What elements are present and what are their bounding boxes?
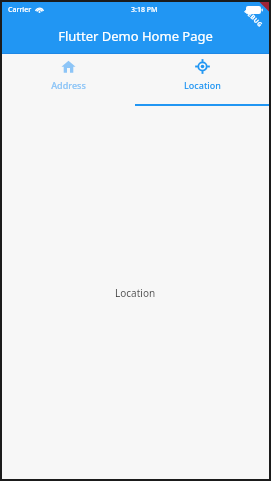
staticText: Location xyxy=(115,286,156,300)
staticText: Flutter Demo Home Page xyxy=(58,27,213,45)
other: Location xyxy=(195,59,210,74)
other: Battery xyxy=(246,6,263,14)
staticText: Location xyxy=(184,79,221,91)
staticText: Carrier xyxy=(8,5,32,15)
button[interactable]: Address xyxy=(2,54,135,106)
staticText: DEBUG xyxy=(242,7,264,29)
other: Address xyxy=(61,59,76,74)
staticText: 3:18 PM xyxy=(131,5,158,15)
button[interactable]: Location xyxy=(135,54,269,106)
other: Wi-Fi xyxy=(35,5,44,14)
staticText: Address xyxy=(51,79,86,91)
